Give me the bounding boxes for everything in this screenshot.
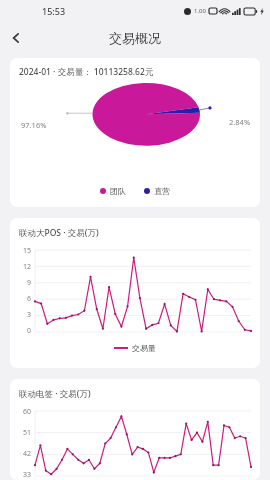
staticText: 联动大POS · 交易(万): [19, 227, 99, 239]
button[interactable]: 交易量: [114, 343, 156, 353]
staticText: 1.00: [194, 7, 206, 15]
staticText: 15:53: [42, 5, 66, 17]
button[interactable]: 联动大POS · 交易(万): [10, 218, 260, 368]
staticText: 联动电签 · 交易(万): [19, 388, 91, 400]
staticText: 42: [23, 449, 32, 459]
button[interactable]: Back: [0, 22, 32, 54]
button[interactable]: 团队: [100, 186, 126, 196]
staticText: 12: [23, 262, 32, 272]
staticText: 9: [27, 278, 32, 288]
button[interactable]: 联动电签 · 交易(万): [10, 379, 260, 480]
staticText: 15: [23, 246, 32, 256]
staticText: 3: [27, 310, 32, 320]
staticText: 97.16%: [21, 120, 47, 130]
staticText: 0: [27, 326, 32, 336]
staticText: 33: [23, 470, 32, 480]
button[interactable]: 2024-01 · 交易量： 10113258.62元: [10, 58, 260, 207]
staticText: 直营: [154, 186, 170, 196]
staticText: 2.84%: [229, 117, 251, 127]
staticText: 团队: [110, 186, 126, 196]
staticText: 6: [27, 294, 32, 304]
staticText: 交易量: [132, 343, 156, 353]
staticText: 交易概况: [109, 30, 161, 46]
staticText: 51: [23, 428, 32, 438]
staticText: 2024-01 · 交易量： 10113258.62元: [19, 66, 154, 78]
staticText: 60: [23, 407, 32, 417]
button[interactable]: 直营: [144, 186, 170, 196]
